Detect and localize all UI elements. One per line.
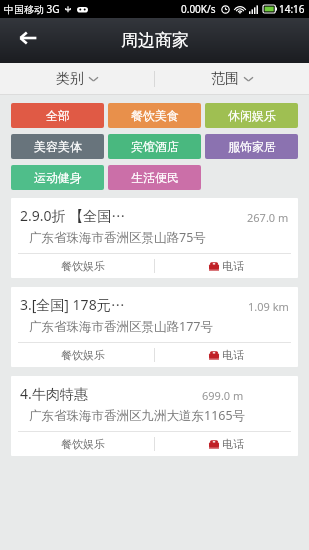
staticText: 全部	[46, 108, 70, 123]
button[interactable]: Back	[8, 18, 48, 58]
staticText: 餐饮娱乐	[61, 348, 105, 362]
staticText: 餐饮娱乐	[61, 259, 105, 273]
staticText: 广东省珠海市香洲区九洲大道东1165号	[29, 407, 246, 424]
staticText: 广东省珠海市香洲区景山路75号	[29, 229, 206, 246]
button[interactable]: 餐饮美食	[108, 103, 201, 128]
staticText: 0.00K/s	[181, 2, 216, 16]
staticText: 广东省珠海市香洲区景山路177号	[29, 318, 213, 335]
button[interactable]: 2.9.0折 【全国通用】仅450元	[11, 198, 298, 278]
staticText: 电话	[222, 437, 244, 451]
staticText: 中国移动 3G	[4, 2, 60, 16]
staticText: 3.[全国] 178元，棒！约翰现金卡	[20, 295, 134, 314]
button[interactable]: 3.[全国] 178元，棒！约翰现金卡	[11, 287, 298, 367]
button[interactable]: 休闲娱乐	[205, 103, 298, 128]
staticText: 运动健身	[34, 170, 82, 185]
staticText: 电话	[222, 259, 244, 273]
staticText: 267.0 m	[247, 210, 289, 225]
button[interactable]: 类别	[0, 63, 154, 95]
staticText: 宾馆酒店	[131, 139, 179, 154]
staticText: 生活便民	[131, 170, 179, 185]
staticText: 餐饮美食	[131, 108, 179, 123]
staticText: 类别	[56, 70, 84, 88]
button[interactable]: 电话	[155, 343, 298, 367]
staticText: 餐饮娱乐	[61, 437, 105, 451]
staticText: 14:16	[279, 2, 305, 16]
button[interactable]: 运动健身	[11, 165, 104, 190]
button[interactable]: 宾馆酒店	[108, 134, 201, 159]
button[interactable]: 餐饮娱乐	[11, 343, 154, 367]
staticText: 2.9.0折 【全国通用】仅450元	[20, 206, 133, 225]
button[interactable]: 生活便民	[108, 165, 201, 190]
staticText: 电话	[222, 348, 244, 362]
staticText: 范围	[211, 70, 239, 88]
button[interactable]: 服饰家居	[205, 134, 298, 159]
button[interactable]: 4.牛肉特惠	[11, 376, 298, 456]
staticText: 4.牛肉特惠	[20, 384, 88, 403]
button[interactable]: 电话	[155, 432, 298, 456]
button[interactable]: 全部	[11, 103, 104, 128]
button[interactable]: 餐饮娱乐	[11, 432, 154, 456]
button[interactable]: 电话	[155, 254, 298, 278]
button[interactable]: 范围	[155, 63, 309, 95]
staticText: 休闲娱乐	[228, 108, 276, 123]
staticText: 1.09 km	[248, 299, 289, 314]
button[interactable]: 美容美体	[11, 134, 104, 159]
staticText: 周边商家	[121, 30, 189, 51]
staticText: 服饰家居	[228, 139, 276, 154]
button[interactable]: 餐饮娱乐	[11, 254, 154, 278]
staticText: 699.0 m	[202, 388, 244, 403]
staticText: 美容美体	[34, 139, 82, 154]
